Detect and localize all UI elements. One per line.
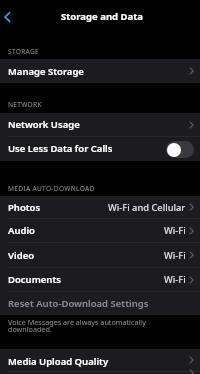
button[interactable]: Use Less Data for Calls — [0, 137, 200, 161]
button[interactable]: Photos — [0, 196, 200, 218]
staticText: Wi-Fi — [164, 249, 186, 262]
staticText: Network Usage — [8, 118, 80, 131]
staticText: Video — [8, 249, 35, 262]
staticText: Wi-Fi and Cellular — [108, 201, 186, 214]
button[interactable]: Network Usage — [0, 113, 200, 136]
button[interactable]: Audio — [0, 219, 200, 242]
staticText: Manage Storage — [8, 65, 84, 78]
staticText: Media Upload Quality — [8, 355, 109, 368]
button[interactable]: Use Less Data for Calls — [166, 141, 194, 158]
button[interactable]: Back — [0, 4, 19, 30]
button[interactable]: Reset Auto-Download Settings — [0, 292, 200, 315]
staticText: NETWORK — [8, 100, 42, 109]
staticText: Storage and Data — [61, 10, 143, 23]
staticText: MEDIA AUTO-DOWNLOAD — [8, 184, 95, 193]
staticText: Use Less Data for Calls — [8, 142, 113, 155]
button[interactable]: Video — [0, 243, 200, 267]
staticText: Documents — [8, 273, 61, 286]
staticText: STORAGE — [8, 47, 40, 56]
button[interactable]: Manage Storage — [0, 59, 200, 83]
staticText: Photos — [8, 201, 41, 214]
staticText: Voice Messages are always automatically … — [8, 317, 146, 334]
button[interactable]: Documents — [0, 268, 200, 291]
button[interactable]: Media Upload Quality — [0, 349, 200, 371]
staticText: Wi-Fi — [164, 224, 186, 237]
staticText: Audio — [8, 224, 35, 237]
staticText: Reset Auto-Download Settings — [8, 297, 149, 310]
staticText: Wi-Fi — [164, 273, 186, 286]
button[interactable]: Chat Backup — [0, 372, 200, 374]
